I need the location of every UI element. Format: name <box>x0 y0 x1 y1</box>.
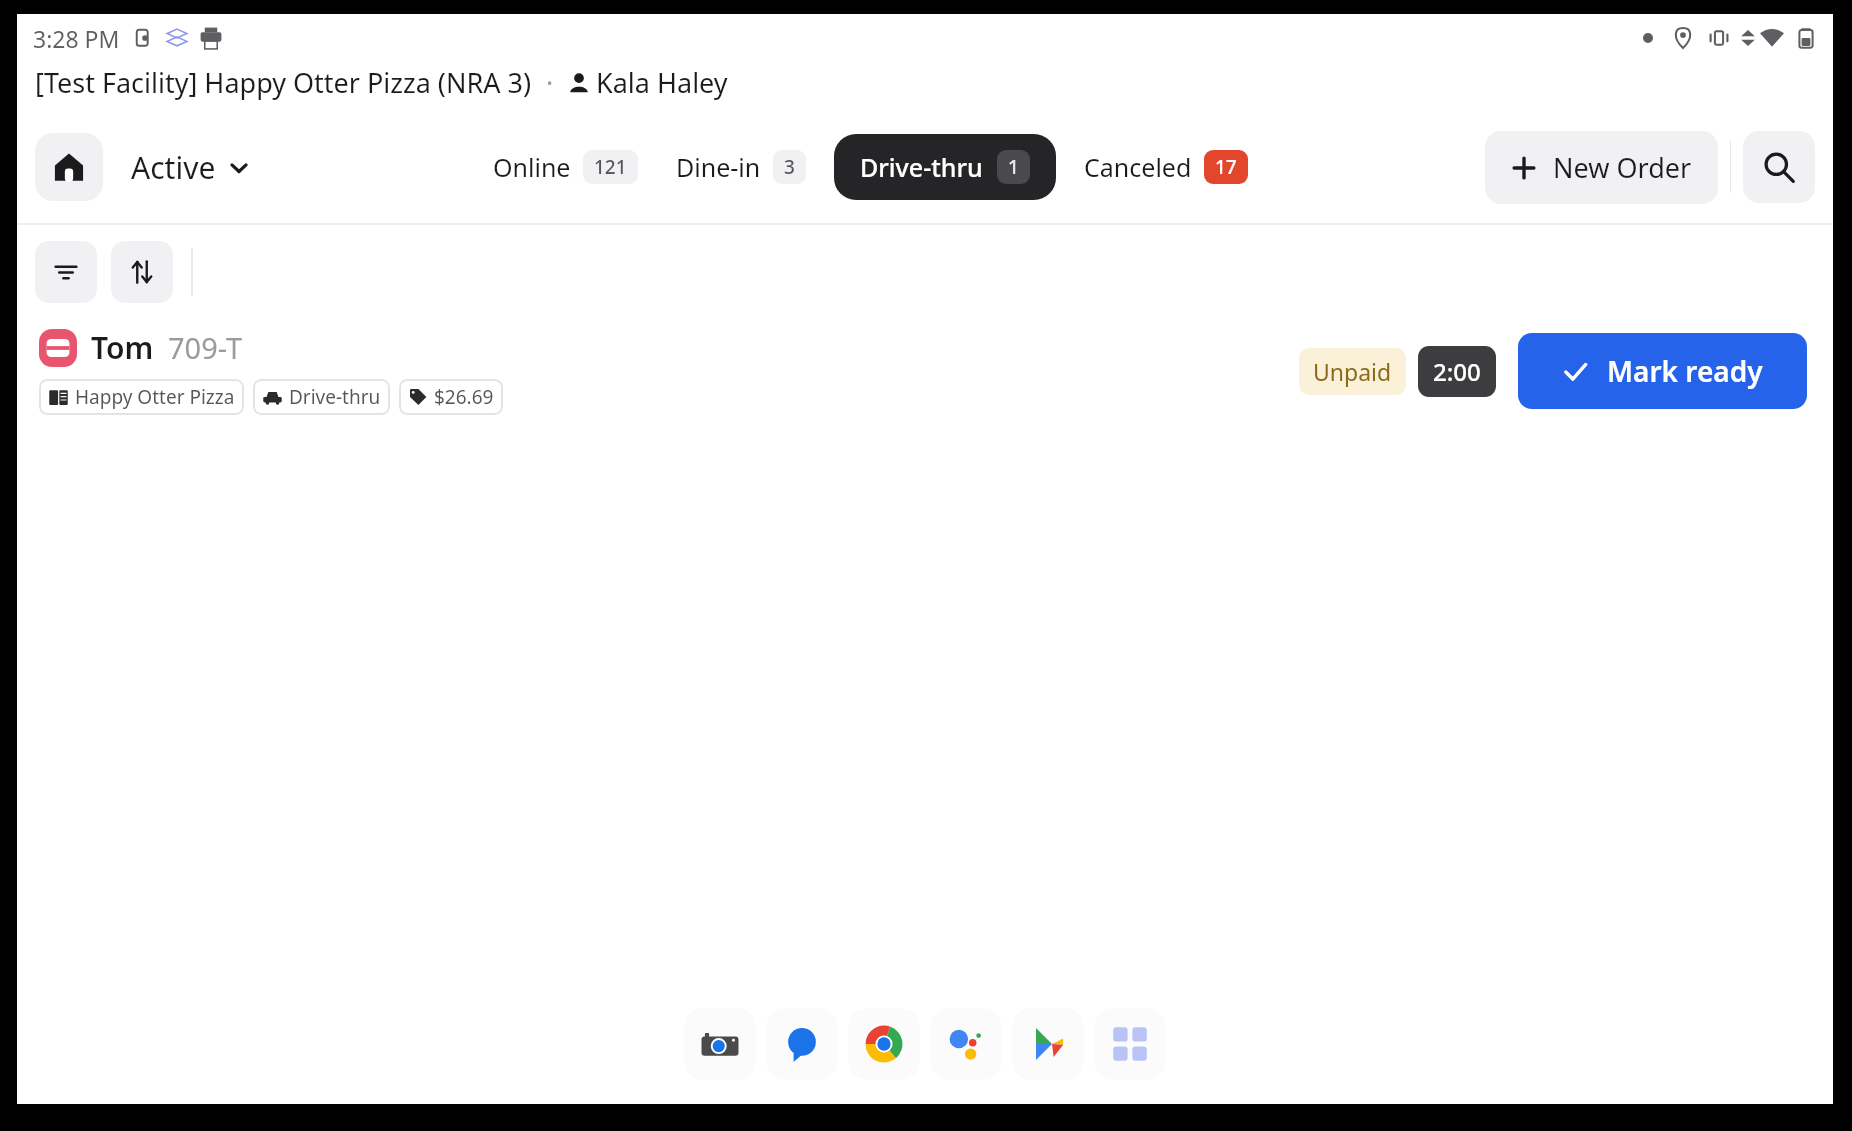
button[interactable]: Happy Otter Pizza <box>39 379 244 415</box>
button[interactable]: Online <box>479 134 652 200</box>
staticText: Tom <box>91 327 154 368</box>
button[interactable]: Assistant <box>930 1008 1002 1080</box>
staticText: Drive-thru <box>289 384 381 410</box>
button[interactable]: Canceled <box>1070 134 1262 200</box>
button[interactable]: Filter <box>35 241 97 303</box>
staticText: Happy Otter Pizza <box>75 384 235 410</box>
button[interactable]: Play Store <box>1012 1008 1084 1080</box>
button[interactable]: Mark ready <box>1518 333 1807 409</box>
button[interactable]: Dine-in <box>662 134 820 200</box>
button[interactable]: Drive-thru <box>253 379 390 415</box>
staticText: Dine-in <box>676 150 761 184</box>
button[interactable]: Tom <box>17 317 1833 425</box>
button[interactable]: Unpaid <box>1299 348 1406 395</box>
staticText: Active <box>131 147 216 188</box>
staticText: 2:00 <box>1433 355 1481 388</box>
button[interactable]: Messages <box>766 1008 838 1080</box>
button[interactable]: All apps <box>1094 1008 1166 1080</box>
button[interactable]: New Order <box>1485 131 1718 204</box>
staticText: Canceled <box>1084 150 1192 184</box>
button[interactable]: Search <box>1743 131 1815 203</box>
staticText: · <box>546 64 554 101</box>
button[interactable]: Active <box>125 139 256 196</box>
button[interactable]: Drive-thru <box>834 134 1056 200</box>
button[interactable]: Camera <box>684 1008 756 1080</box>
staticText: Mark ready <box>1607 352 1763 390</box>
button[interactable]: Sort <box>111 241 173 303</box>
staticText: 17 <box>1215 154 1237 180</box>
staticText: $26.69 <box>434 384 494 410</box>
staticText: Kala Haley <box>596 64 728 101</box>
button[interactable]: Home <box>35 133 103 201</box>
staticText: Online <box>493 150 571 184</box>
button[interactable]: Chrome <box>848 1008 920 1080</box>
button[interactable]: $26.69 <box>399 379 503 415</box>
staticText: Drive-thru <box>860 150 983 184</box>
staticText: 709-T <box>168 328 243 367</box>
staticText: 121 <box>594 154 627 180</box>
staticText: New Order <box>1553 149 1692 186</box>
staticText: Unpaid <box>1313 356 1392 387</box>
staticText: 3:28 PM <box>33 23 120 54</box>
staticText: 3 <box>784 154 795 180</box>
staticText: 1 <box>1008 154 1019 180</box>
staticText: [Test Facility] Happy Otter Pizza (NRA 3… <box>35 64 532 101</box>
